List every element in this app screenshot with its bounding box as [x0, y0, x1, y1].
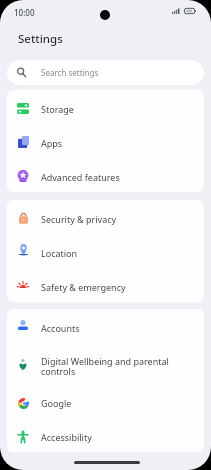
button[interactable]: Apps	[7, 124, 204, 158]
staticText: Digital Wellbeing and parental controls	[41, 355, 194, 377]
button[interactable]: Safety & emergency	[7, 268, 204, 302]
staticText: Search settings	[41, 67, 99, 78]
staticText: 10:00	[14, 7, 35, 18]
button[interactable]: Security & privacy	[7, 200, 204, 234]
button[interactable]: Accessibility	[7, 418, 204, 452]
button[interactable]: Storage	[7, 90, 204, 124]
staticText: Accessibility	[41, 431, 92, 443]
button[interactable]: Search settings	[7, 60, 204, 85]
staticText: Accounts	[41, 322, 80, 334]
button[interactable]: Advanced features	[7, 158, 204, 192]
staticText: Storage	[41, 103, 74, 115]
staticText: Location	[41, 247, 78, 259]
button[interactable]: Google	[7, 384, 204, 418]
staticText: Safety & emergency	[41, 281, 126, 293]
staticText: Advanced features	[41, 171, 120, 183]
button[interactable]: Accounts	[7, 309, 204, 343]
staticText: Security & privacy	[41, 213, 117, 225]
staticText: Settings	[18, 31, 63, 47]
button[interactable]: Location	[7, 234, 204, 268]
button[interactable]: Digital Wellbeing and parental controls	[7, 343, 204, 384]
staticText: Apps	[41, 137, 63, 149]
staticText: Google	[41, 397, 72, 409]
